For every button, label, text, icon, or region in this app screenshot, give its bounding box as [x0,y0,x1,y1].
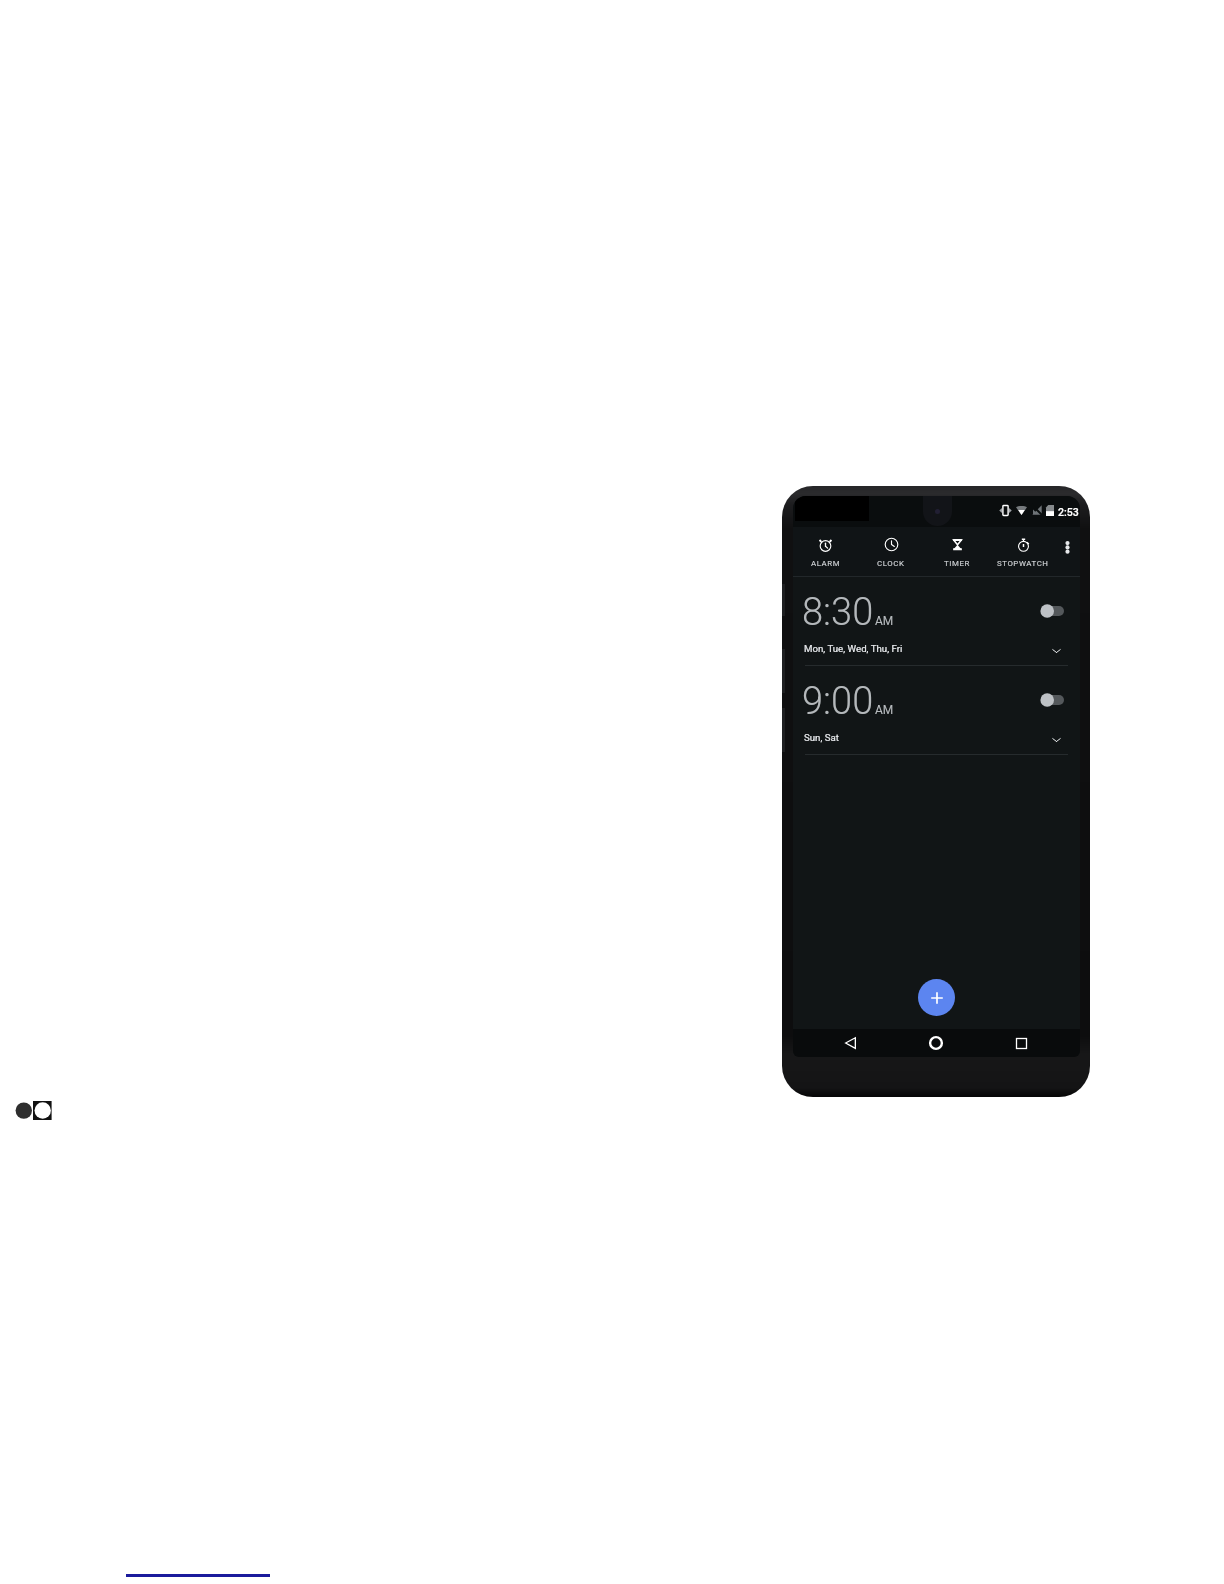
staticText: 9:00 [802,679,874,724]
button[interactable]: TIMER [924,527,990,576]
button[interactable]: More options [1056,527,1080,576]
staticText: CLOCK [877,559,905,568]
button[interactable]: Add alarm [918,979,955,1016]
button[interactable]: ALARM [793,527,858,576]
staticText: AM [875,614,894,628]
staticText: 2:53 [1058,506,1079,518]
staticText: ALARM [811,559,841,568]
staticText: AM [875,703,894,717]
button[interactable]: Recents [1010,1032,1032,1054]
staticText: Mon, Tue, Wed, Thu, Fri [804,643,903,654]
button[interactable]: Toggle alarm [1036,687,1074,713]
button[interactable]: 8:30 [793,577,1080,666]
staticText: STOPWATCH [997,559,1049,568]
button[interactable]: Home [924,1031,948,1055]
button[interactable]: STOPWATCH [990,527,1056,576]
staticText: Sun, Sat [804,732,839,743]
button[interactable]: Toggle alarm [1036,598,1074,624]
button[interactable]: Back [839,1032,861,1054]
button[interactable]: 9:00 [793,666,1080,755]
staticText: 8:30 [802,590,874,635]
staticText: TIMER [944,559,970,568]
button[interactable]: CLOCK [858,527,924,576]
